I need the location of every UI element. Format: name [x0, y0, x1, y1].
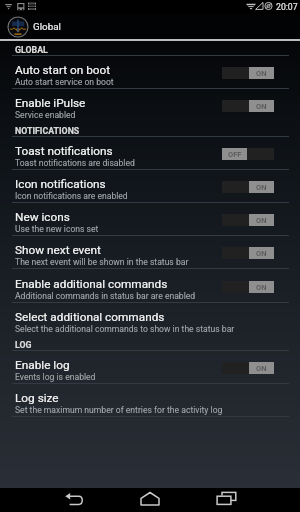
button[interactable]: Back [0, 488, 100, 512]
button[interactable]: ON [222, 362, 274, 374]
staticText: Show next event [15, 243, 101, 257]
staticText: NOTIFICATIONS [15, 126, 80, 136]
staticText: 20:07 [276, 2, 298, 12]
staticText: GLOBAL [15, 45, 48, 55]
staticText: The next event will be shown in the stat… [15, 257, 189, 267]
button[interactable]: New icons [0, 203, 300, 236]
staticText: Icon notifications are enabled [15, 191, 128, 201]
staticText: ON [256, 183, 267, 192]
button[interactable]: Home [100, 488, 200, 512]
staticText: Enable additional commands [15, 277, 168, 291]
button[interactable]: ON [222, 67, 274, 79]
staticText: Set the maximum number of entries for th… [15, 405, 223, 415]
button[interactable]: Auto start on boot [0, 56, 300, 89]
staticText: Auto start on boot [15, 63, 111, 77]
button[interactable]: Select additional commands [0, 303, 300, 336]
button[interactable]: Icon notifications [0, 170, 300, 203]
staticText: ON [256, 69, 267, 78]
button[interactable]: Show next event [0, 236, 300, 269]
button[interactable]: Enable additional commands [0, 270, 300, 303]
staticText: Select the additional commands to show i… [15, 324, 235, 334]
staticText: Enable iPulse [15, 96, 86, 110]
staticText: Toast notifications are disabled [15, 158, 135, 168]
staticText: Additional commands in status bar are en… [15, 291, 196, 301]
staticText: OFF [228, 150, 242, 159]
staticText: ON [256, 102, 267, 111]
staticText: ON [256, 249, 267, 258]
button[interactable]: Enable log [0, 351, 300, 384]
staticText: ON [256, 283, 267, 292]
button[interactable]: ON [222, 100, 274, 112]
button[interactable]: ON [222, 281, 274, 293]
staticText: Use the new icons set [15, 224, 99, 234]
staticText: New icons [15, 210, 70, 224]
button[interactable]: Enable iPulse [0, 89, 300, 122]
staticText: Icon notifications [15, 177, 106, 191]
staticText: Service enabled [15, 110, 76, 120]
button[interactable]: ON [222, 214, 274, 226]
staticText: ON [256, 216, 267, 225]
staticText: Auto start service on boot [15, 77, 114, 87]
button[interactable]: ON [222, 247, 274, 259]
button[interactable]: OFF [222, 148, 274, 160]
button[interactable]: ON [222, 181, 274, 193]
staticText: Events log is enabled [15, 372, 96, 382]
staticText: ON [256, 364, 267, 373]
staticText: LOG [15, 340, 32, 350]
button[interactable]: Recent apps [200, 488, 300, 512]
staticText: Select additional commands [15, 310, 165, 324]
staticText: Log size [15, 391, 59, 405]
button[interactable]: Log size [0, 384, 300, 417]
staticText: Global [33, 21, 61, 32]
button[interactable]: Global [0, 14, 300, 39]
button[interactable]: Toast notifications [0, 137, 300, 170]
staticText: Enable log [15, 358, 70, 372]
staticText: Toast notifications [15, 144, 113, 158]
